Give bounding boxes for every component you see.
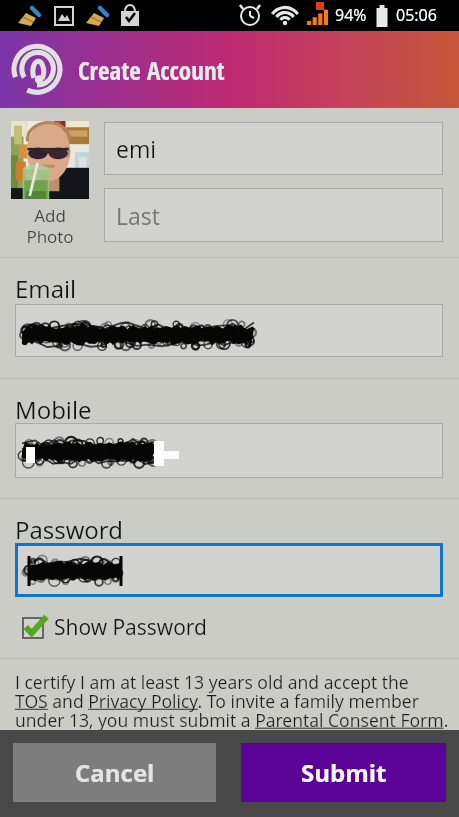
button[interactable]: Cancel [13,743,216,802]
staticText: Add Photo [26,204,74,248]
button[interactable]: Last [104,188,443,242]
staticText: emi [116,133,157,164]
button[interactable]: Add Photo [11,121,89,248]
button[interactable]: Show Password [21,613,207,642]
staticText: Submit [301,756,387,789]
staticText: Cancel [75,756,155,789]
staticText: Last [116,200,160,231]
button[interactable] [15,423,443,478]
staticText: I certify I am at least 13 years old and… [15,670,449,732]
button[interactable] [15,543,443,597]
staticText: Password [15,513,123,546]
staticText: Mobile [15,393,92,426]
staticText: Show Password [54,613,207,642]
staticText: Email [15,272,77,305]
button[interactable]: Submit [241,743,446,802]
button[interactable]: emi [104,122,443,175]
other: Life360 logo [6,39,68,101]
button[interactable] [15,304,443,357]
staticText: 94% [335,4,367,26]
staticText: Create Account [78,53,225,87]
staticText: 05:06 [396,4,437,26]
